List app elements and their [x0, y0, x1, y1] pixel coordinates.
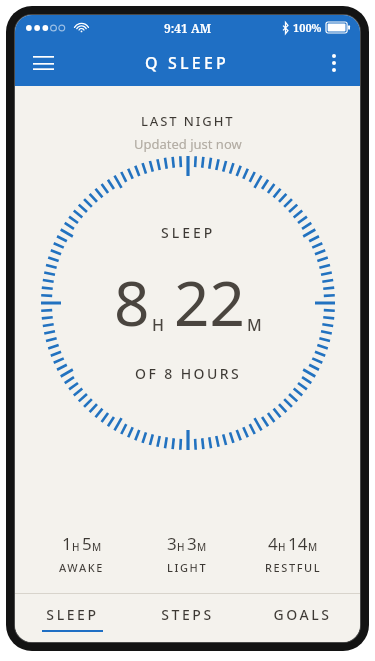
button[interactable]: Open navigation menu	[23, 43, 63, 83]
button[interactable]: 3	[134, 528, 240, 579]
staticText: SLEEP	[46, 605, 99, 624]
staticText: 3	[187, 532, 197, 555]
staticText: OF 8 HOURS	[135, 364, 241, 383]
staticText: H	[278, 540, 286, 554]
button[interactable]: 4	[240, 528, 346, 579]
staticText: 4	[268, 532, 278, 555]
staticText: H	[72, 540, 80, 554]
staticText: 9:41 AM	[164, 20, 212, 36]
staticText: 22	[174, 260, 245, 344]
staticText: LAST NIGHT	[141, 112, 235, 130]
staticText: 14	[288, 532, 308, 555]
staticText: 8	[114, 260, 150, 344]
staticText: RESTFUL	[265, 560, 322, 575]
staticText: 3	[167, 532, 177, 555]
button[interactable]: More options	[314, 43, 354, 83]
staticText: 1	[62, 532, 72, 555]
staticText: Q SLEEP	[145, 52, 230, 74]
staticText: M	[308, 540, 318, 554]
staticText: M	[247, 314, 262, 336]
staticText: STEPS	[161, 605, 214, 624]
staticText: SLEEP	[161, 223, 216, 242]
staticText: M	[197, 540, 207, 554]
staticText: H	[152, 314, 164, 336]
staticText: 100%	[293, 20, 322, 35]
staticText: GOALS	[273, 605, 332, 624]
staticText: 5	[82, 532, 92, 555]
staticText: LIGHT	[167, 560, 208, 575]
button[interactable]: SLEEP	[15, 594, 130, 642]
button[interactable]: STEPS	[130, 594, 245, 642]
button[interactable]: 1	[29, 528, 134, 579]
staticText: AWAKE	[59, 560, 104, 575]
staticText: M	[92, 540, 102, 554]
staticText: Updated just now	[134, 135, 242, 153]
button[interactable]: GOALS	[245, 594, 360, 642]
staticText: H	[177, 540, 185, 554]
